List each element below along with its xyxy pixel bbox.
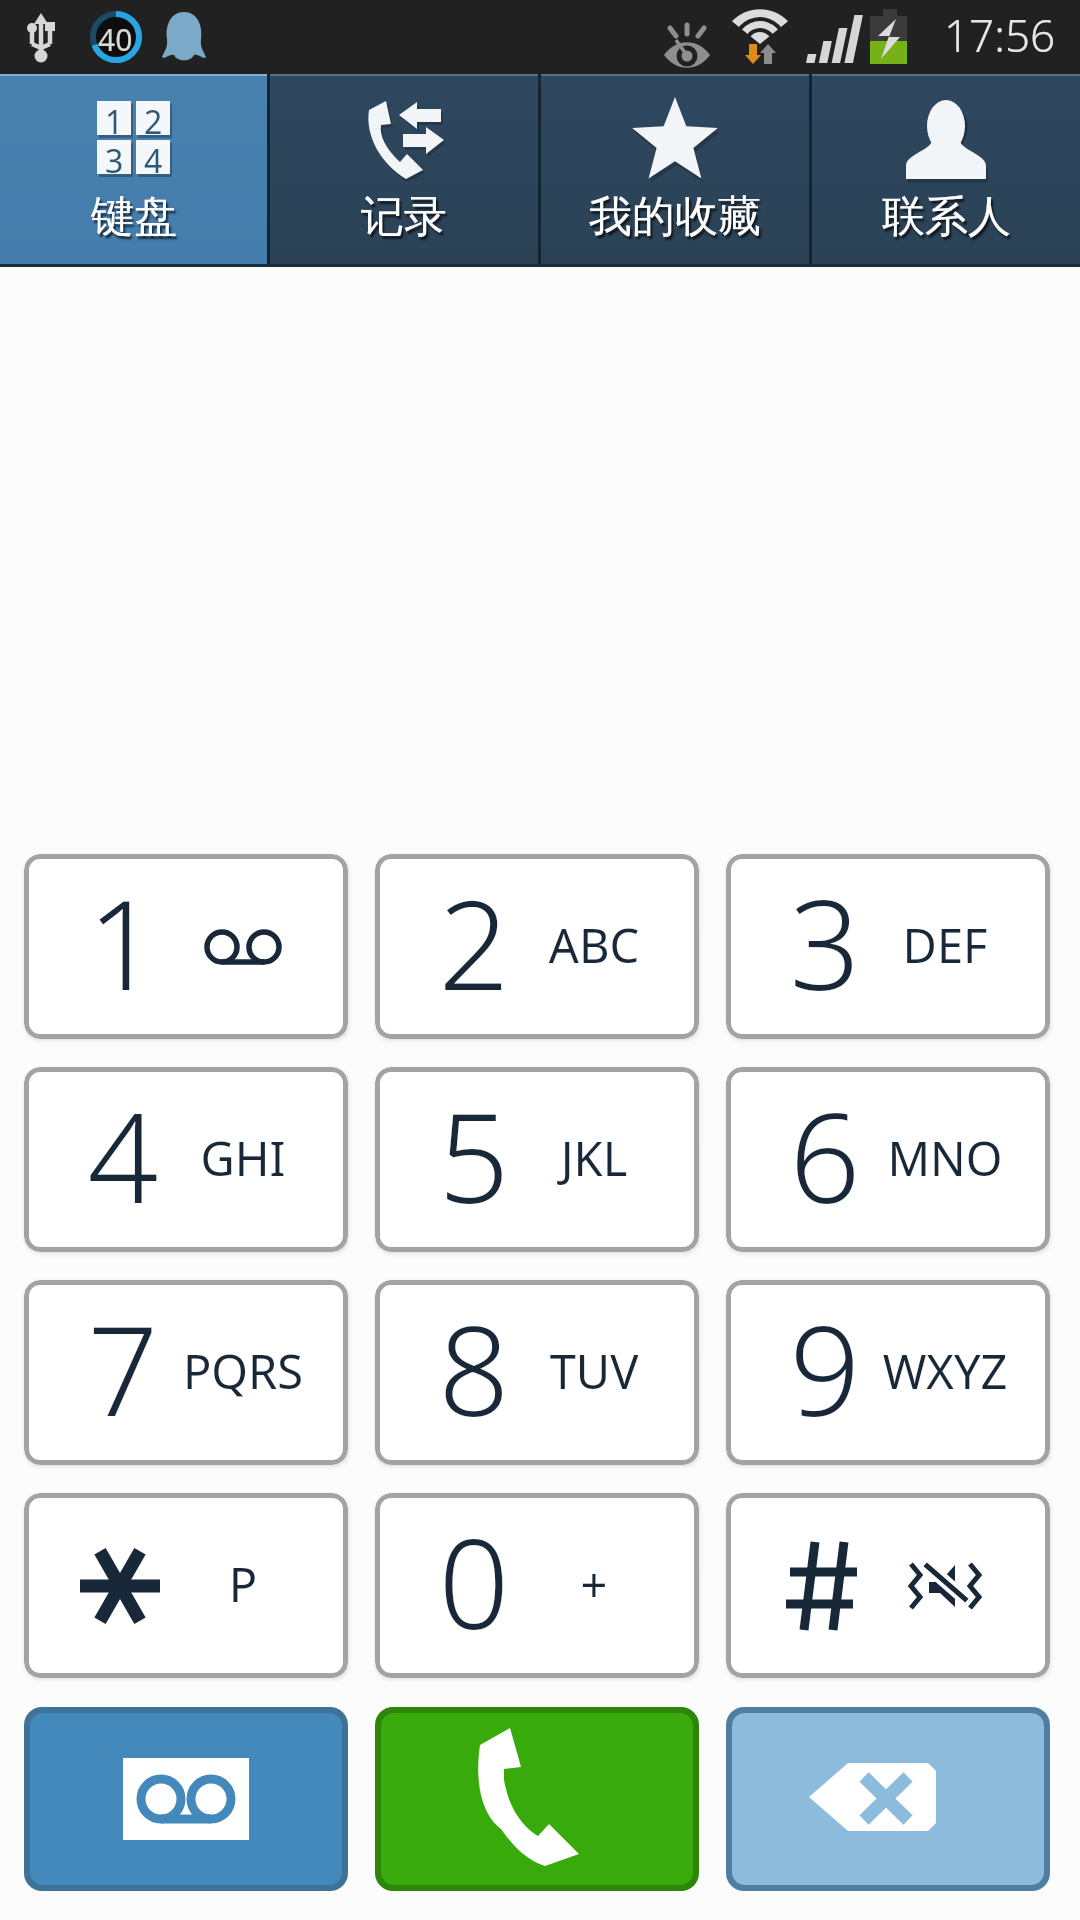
- button[interactable]: 9: [726, 1280, 1050, 1465]
- staticText: 6: [765, 1070, 885, 1239]
- staticText: PQRS: [153, 1339, 333, 1403]
- staticText: 8: [414, 1283, 534, 1452]
- staticText: 5: [414, 1070, 534, 1239]
- staticText: 40: [98, 19, 133, 60]
- button[interactable]: 8: [375, 1280, 699, 1465]
- staticText: 4: [144, 139, 163, 173]
- button[interactable]: Delete: [732, 1713, 1044, 1885]
- staticText: 联系人: [882, 190, 1011, 244]
- button[interactable]: 1: [24, 854, 348, 1039]
- staticText: JKL: [504, 1126, 684, 1190]
- button[interactable]: [726, 1493, 1050, 1678]
- staticText: 2: [414, 857, 534, 1026]
- staticText: DEF: [855, 913, 1035, 977]
- button[interactable]: 4: [24, 1067, 348, 1252]
- staticText: 记录: [361, 190, 447, 244]
- staticText: 我的收藏: [589, 190, 761, 244]
- staticText: 1: [63, 857, 183, 1026]
- button[interactable]: 3: [726, 854, 1050, 1039]
- button[interactable]: 7: [24, 1280, 348, 1465]
- button[interactable]: 5: [375, 1067, 699, 1252]
- button[interactable]: 我的收藏: [541, 74, 809, 264]
- staticText: 键盘: [91, 190, 177, 244]
- button[interactable]: 联系人: [812, 74, 1080, 264]
- staticText: +: [504, 1552, 684, 1616]
- staticText: 17:56: [944, 5, 1056, 65]
- staticText: GHI: [153, 1126, 333, 1190]
- button[interactable]: 6: [726, 1067, 1050, 1252]
- staticText: 9: [765, 1283, 885, 1452]
- button[interactable]: Voicemail: [30, 1713, 342, 1885]
- staticText: 1: [105, 100, 124, 134]
- staticText: P: [153, 1552, 333, 1616]
- staticText: WXYZ: [855, 1339, 1035, 1403]
- button[interactable]: 记录: [270, 74, 538, 264]
- button[interactable]: 1: [0, 74, 267, 264]
- button[interactable]: Call: [381, 1713, 693, 1885]
- staticText: 2: [144, 100, 163, 134]
- staticText: TUV: [504, 1339, 684, 1403]
- staticText: 7: [63, 1283, 183, 1452]
- button[interactable]: 2: [375, 854, 699, 1039]
- button[interactable]: 0: [375, 1493, 699, 1678]
- staticText: MNO: [855, 1126, 1035, 1190]
- staticText: 0: [414, 1496, 534, 1665]
- staticText: 3: [105, 139, 124, 173]
- button[interactable]: P: [24, 1493, 348, 1678]
- staticText: ABC: [504, 913, 684, 977]
- staticText: 3: [765, 857, 885, 1026]
- staticText: 4: [63, 1070, 183, 1239]
